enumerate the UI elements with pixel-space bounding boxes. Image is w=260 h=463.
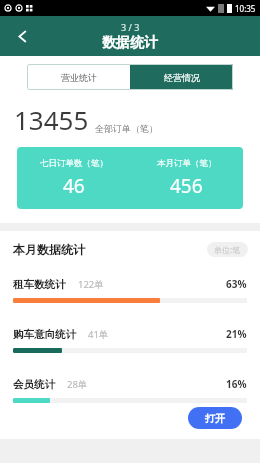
staticText: 28单 — [67, 378, 88, 391]
button[interactable]: Back — [8, 22, 36, 50]
staticText: 租车数统计 — [13, 278, 66, 291]
staticText: 10:35 — [235, 3, 256, 14]
button[interactable]: 经营情况 — [130, 64, 233, 90]
button[interactable]: 营业统计 — [27, 64, 130, 90]
staticText: 456 — [170, 173, 203, 199]
staticText: 41单 — [88, 328, 109, 341]
staticText: 63% — [226, 277, 247, 291]
staticText: 营业统计 — [61, 72, 97, 83]
staticText: 购车意向统计 — [13, 328, 76, 341]
staticText: 单位:笔 — [214, 244, 241, 255]
staticText: 46 — [63, 173, 85, 199]
staticText: 打开 — [205, 412, 225, 425]
staticText: 本月数据统计 — [13, 242, 85, 257]
staticText: 21% — [226, 327, 247, 341]
staticText: 数据统计 — [102, 34, 158, 52]
staticText: 全部订单（笔） — [95, 123, 158, 134]
button[interactable]: 租车数统计 — [0, 267, 260, 317]
staticText: 13455 — [14, 102, 89, 137]
staticText: 16% — [226, 377, 247, 391]
staticText: 3 / 3 — [121, 21, 140, 33]
button[interactable]: 购车意向统计 — [0, 317, 260, 367]
button[interactable]: 打开 — [188, 407, 242, 429]
staticText: 本月订单（笔） — [157, 158, 217, 169]
staticText: 会员统计 — [13, 378, 55, 391]
staticText: 122单 — [78, 278, 104, 291]
staticText: 经营情况 — [164, 72, 200, 83]
staticText: 七日订单数（笔） — [40, 158, 108, 169]
